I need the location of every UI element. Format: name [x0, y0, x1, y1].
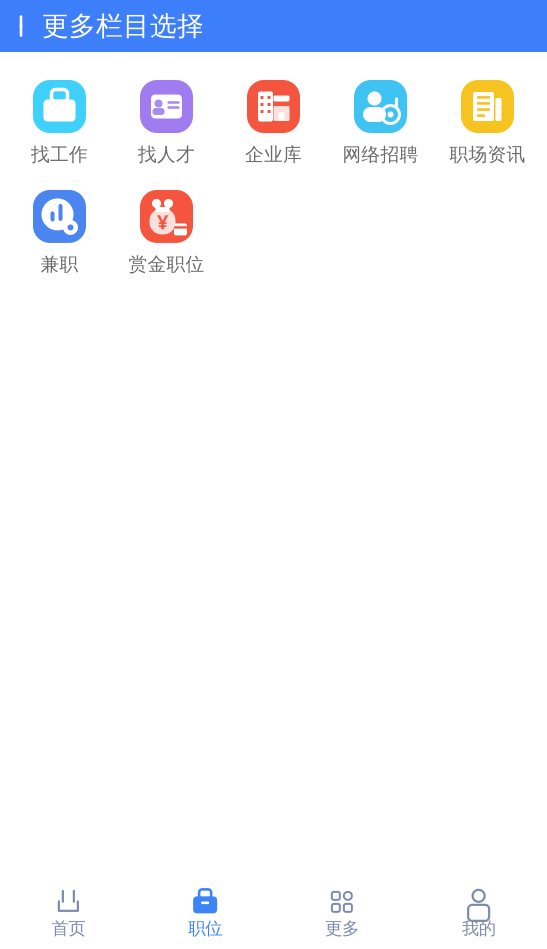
button[interactable]: 我的: [410, 880, 547, 949]
staticText: 找人才: [138, 143, 195, 166]
button[interactable]: 职位: [137, 880, 274, 949]
staticText: 我的: [462, 918, 496, 939]
staticText: 首页: [51, 918, 85, 939]
button[interactable]: 首页: [0, 880, 137, 949]
staticText: 更多: [325, 918, 359, 939]
button[interactable]: 兼职: [6, 190, 113, 276]
button[interactable]: 企业库: [220, 80, 327, 166]
button[interactable]: 找人才: [113, 80, 220, 166]
staticText: 企业库: [245, 143, 302, 166]
staticText: 职位: [188, 918, 222, 939]
button[interactable]: 找工作: [6, 80, 113, 166]
button[interactable]: 职场资讯: [434, 80, 541, 166]
staticText: 赏金职位: [128, 253, 204, 276]
staticText: 找工作: [31, 143, 88, 166]
staticText: ¥: [157, 208, 168, 235]
staticText: 网络招聘: [342, 143, 418, 166]
staticText: 职场资讯: [449, 143, 525, 166]
staticText: 更多栏目选择: [42, 10, 204, 42]
button[interactable]: 网络招聘: [327, 80, 434, 166]
button[interactable]: 更多: [273, 880, 410, 949]
staticText: 兼职: [40, 253, 78, 276]
button[interactable]: 返回: [0, 0, 42, 52]
button[interactable]: ¥: [113, 190, 220, 276]
